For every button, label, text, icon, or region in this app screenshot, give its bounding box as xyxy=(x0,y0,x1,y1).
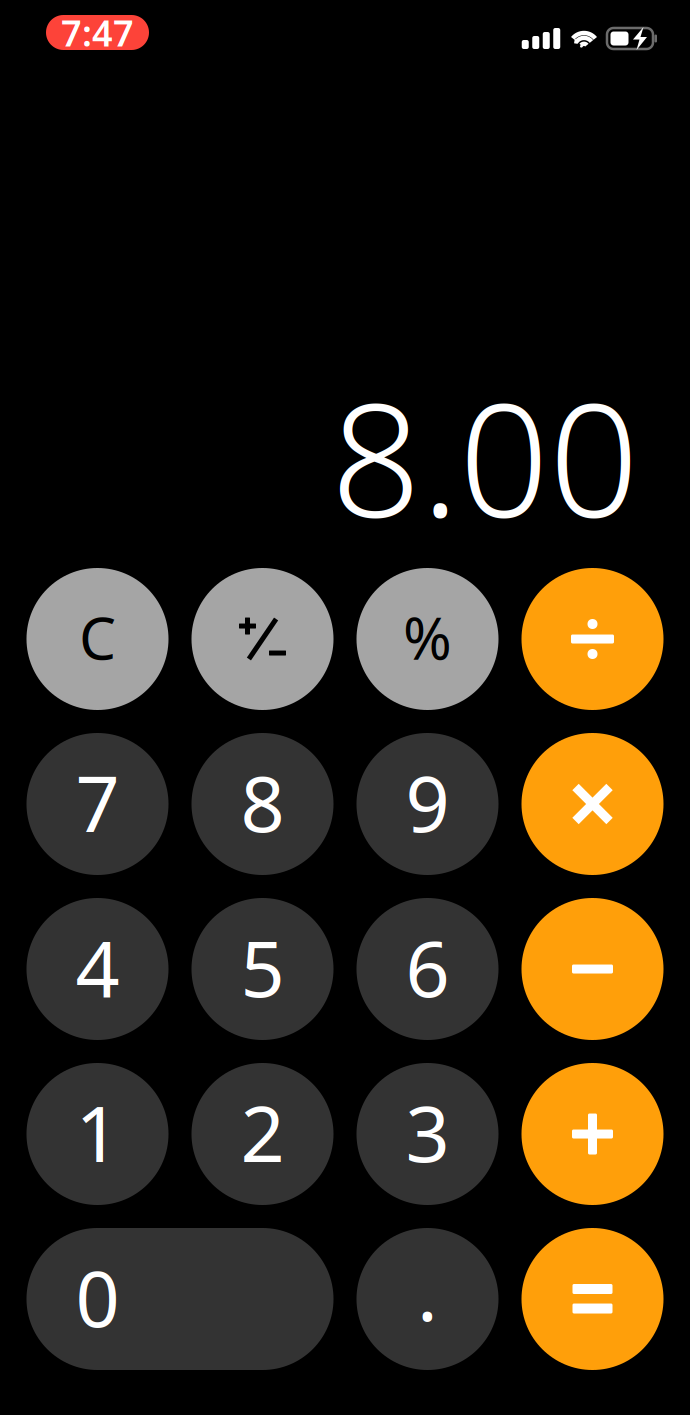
staticText: 3 xyxy=(405,1081,449,1183)
staticText: . xyxy=(417,1240,438,1342)
button[interactable]: Divide xyxy=(521,568,663,710)
button[interactable]: 2 xyxy=(191,1063,333,1205)
staticText: 0 xyxy=(75,1246,119,1348)
button[interactable]: . xyxy=(356,1228,498,1370)
staticText: 5 xyxy=(240,916,284,1018)
button[interactable]: 8 xyxy=(191,733,333,875)
staticText: 7:47 xyxy=(61,9,134,56)
button[interactable]: Minus xyxy=(521,898,663,1040)
button[interactable]: 5 xyxy=(191,898,333,1040)
staticText: 2 xyxy=(240,1081,284,1183)
button[interactable]: 0 xyxy=(26,1228,333,1370)
staticText: 4 xyxy=(75,916,119,1018)
staticText: 6 xyxy=(405,916,449,1018)
button[interactable]: 7 xyxy=(26,733,168,875)
staticText: 9 xyxy=(405,751,449,853)
button[interactable]: 3 xyxy=(356,1063,498,1205)
staticText: 8.00 xyxy=(331,351,639,560)
button[interactable]: C xyxy=(26,568,168,710)
button[interactable]: Multiply xyxy=(521,733,663,875)
staticText: C xyxy=(79,598,116,676)
button[interactable]: 9 xyxy=(356,733,498,875)
button[interactable]: 4 xyxy=(26,898,168,1040)
button[interactable]: 1 xyxy=(26,1063,168,1205)
button[interactable]: Plus minus xyxy=(191,568,333,710)
button[interactable]: Plus xyxy=(521,1063,663,1205)
staticText: 1 xyxy=(75,1081,119,1183)
staticText: % xyxy=(403,598,452,676)
button[interactable]: % xyxy=(356,568,498,710)
staticText: 7 xyxy=(75,751,119,853)
staticText: 8 xyxy=(240,751,284,853)
button[interactable]: Equals xyxy=(521,1228,663,1370)
button[interactable]: 6 xyxy=(356,898,498,1040)
